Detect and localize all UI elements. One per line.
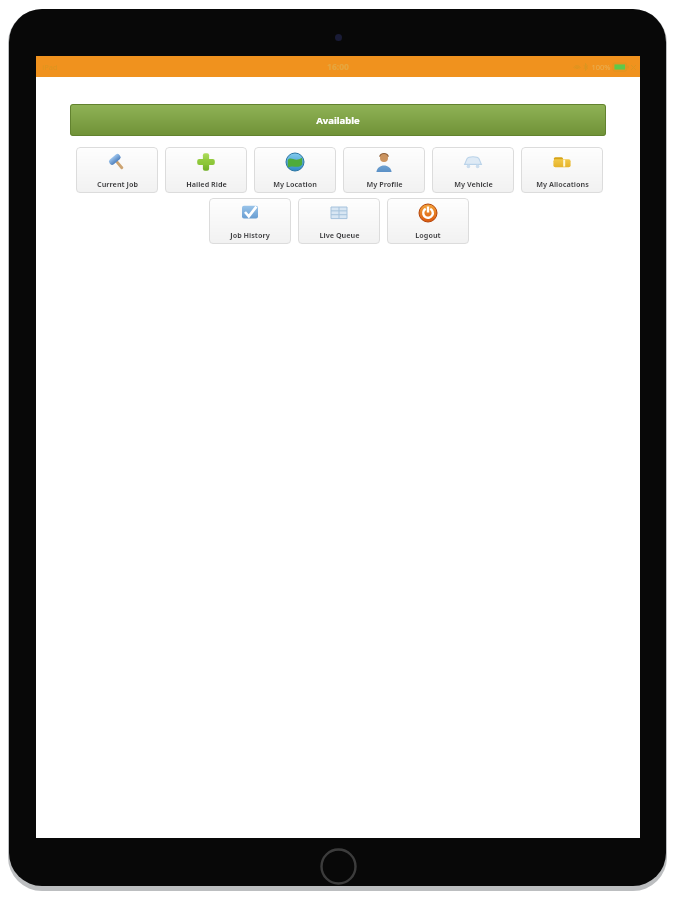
staticText: iPad [42,62,58,72]
other: Hailed Ride [196,152,216,172]
button[interactable]: My Allocations [521,147,603,193]
other: My Vehicle [463,152,483,172]
other: Current Job [107,152,127,172]
staticText: Live Queue [319,230,360,240]
staticText: Hailed Ride [186,179,227,189]
other: My Profile [374,152,394,172]
other: My Allocations [552,152,572,172]
staticText: 100% [591,62,611,72]
staticText: My Vehicle [454,179,493,189]
other: Live Queue [329,203,349,223]
other: My Location [285,152,305,172]
button[interactable]: My Profile [343,147,425,193]
staticText: My Location [273,179,317,189]
other: Job History [240,203,260,223]
button[interactable]: Hailed Ride [165,147,247,193]
button[interactable]: Current Job [76,147,158,193]
button[interactable]: Live Queue [298,198,380,244]
staticText: Current Job [97,179,138,189]
button[interactable]: My Vehicle [432,147,514,193]
button[interactable]: Available [70,104,606,136]
staticText: Logout [415,230,441,240]
button[interactable]: Logout [387,198,469,244]
staticText: My Profile [366,179,403,189]
staticText: 16:00 [327,61,349,73]
staticText: Available [316,114,360,127]
staticText: My Allocations [536,179,589,189]
other: Logout [418,203,438,223]
staticText: Job History [230,230,270,240]
button[interactable]: My Location [254,147,336,193]
button[interactable]: Job History [209,198,291,244]
